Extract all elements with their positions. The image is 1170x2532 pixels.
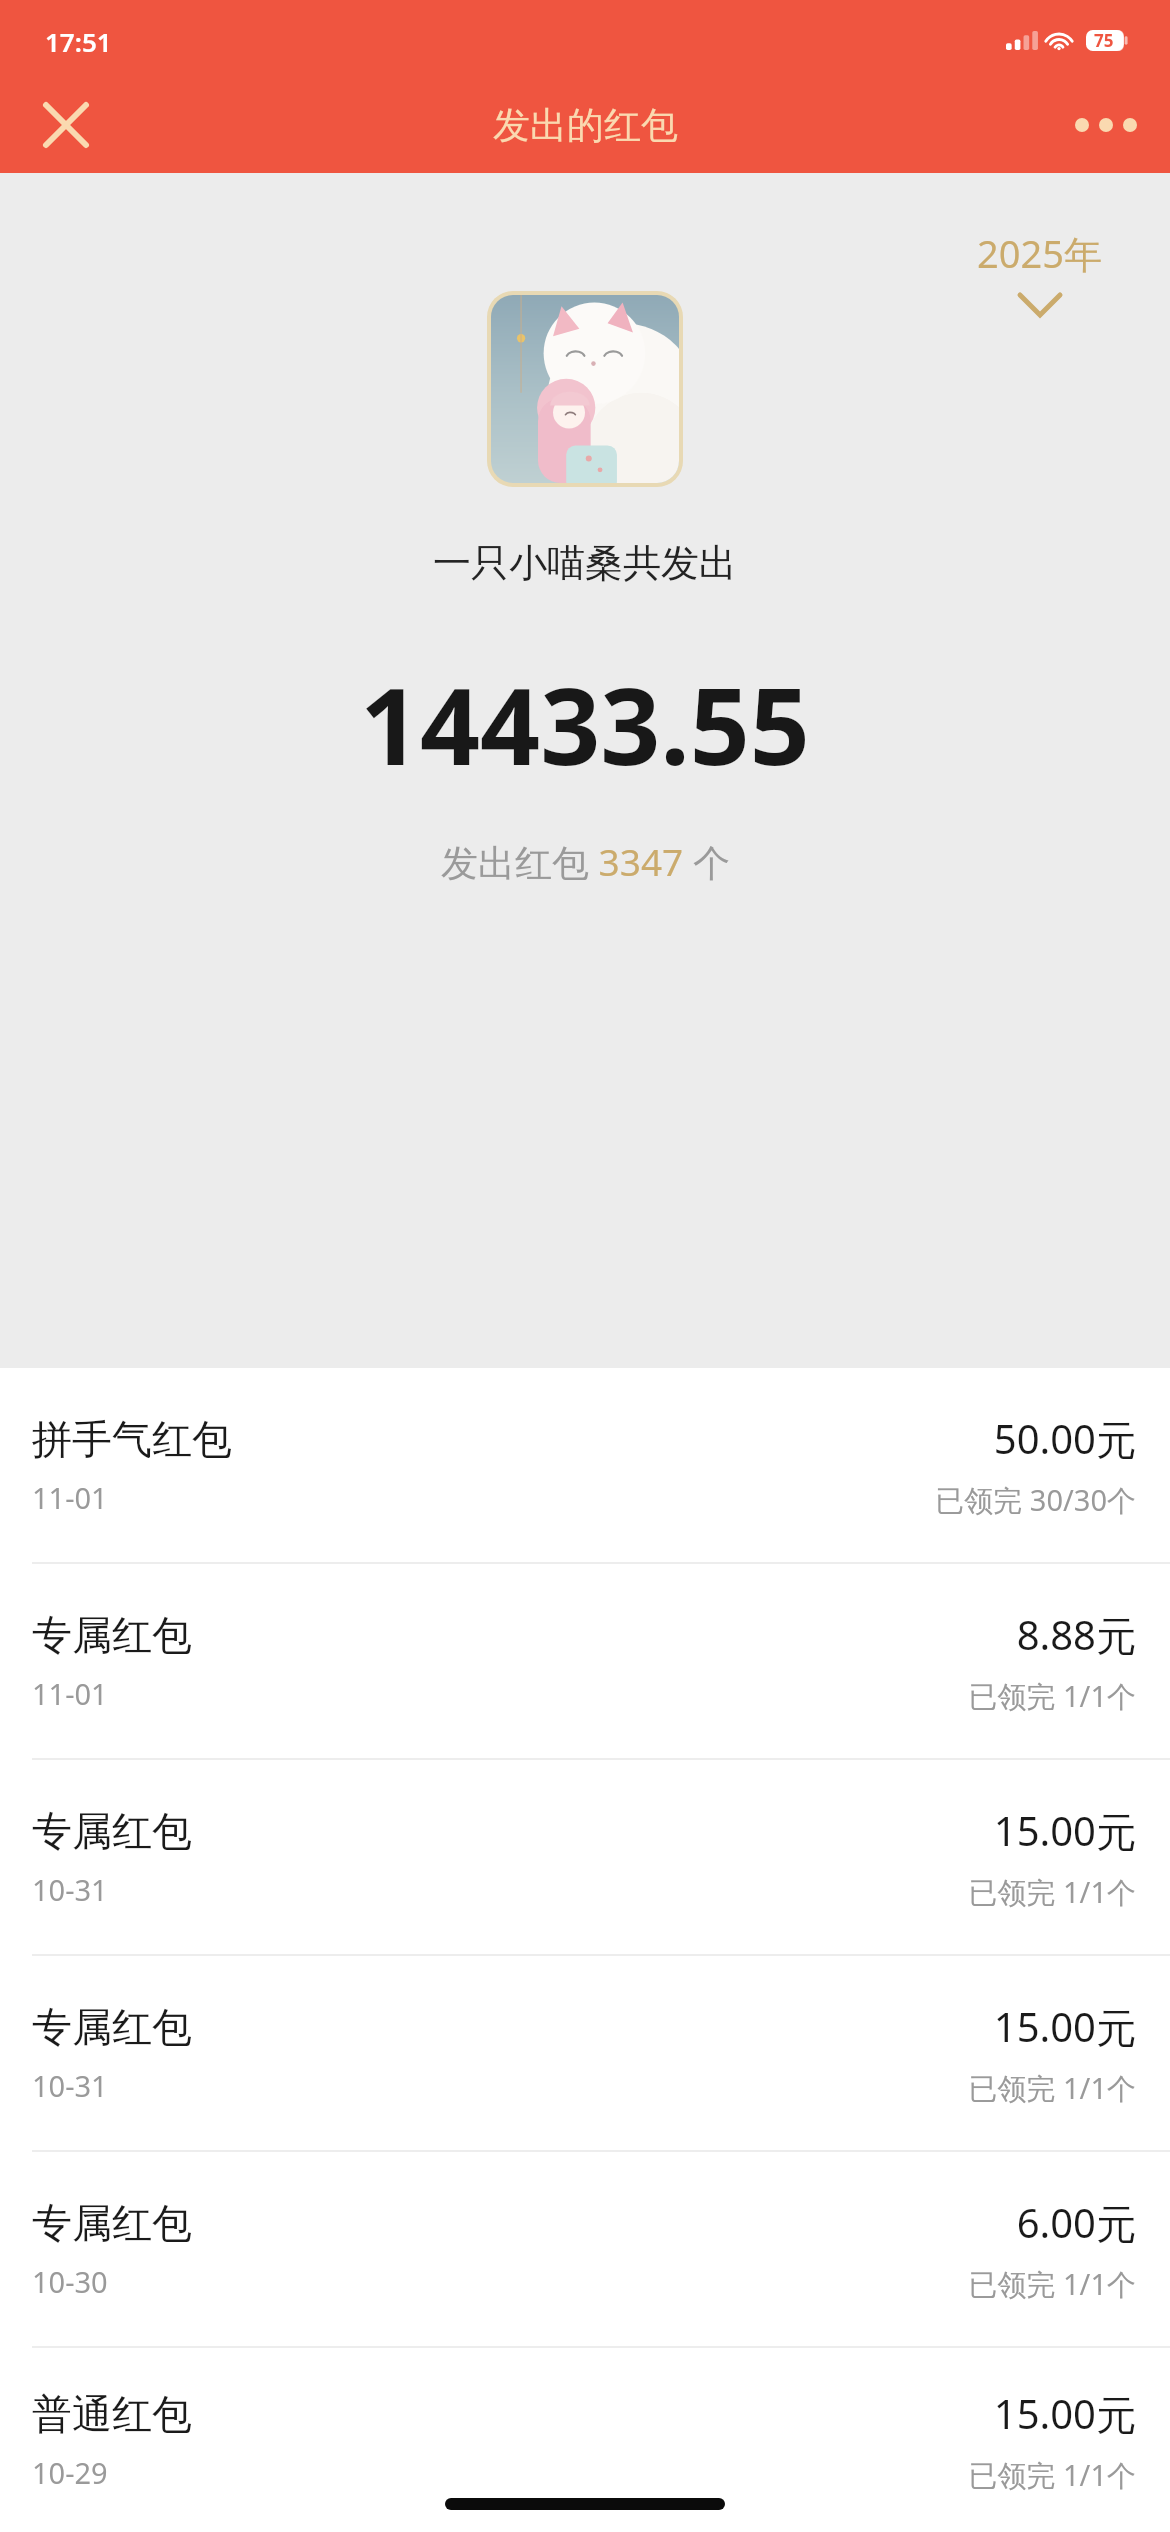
staticText: 50.00元 <box>993 1411 1136 1466</box>
staticText: 普通红包 <box>32 2389 192 2439</box>
staticText: 6.00元 <box>1016 2195 1136 2250</box>
staticText: 11-01 <box>32 1478 108 1517</box>
staticText: 已领完 1/1个 <box>968 1872 1136 1912</box>
staticText: 10-29 <box>32 2453 108 2492</box>
staticText: 已领完 1/1个 <box>968 2068 1136 2108</box>
button[interactable]: 专属红包 <box>0 2152 1170 2346</box>
staticText: 8.88元 <box>1016 1607 1136 1662</box>
staticText: 专属红包 <box>32 1806 192 1856</box>
staticText: 2025年 <box>977 227 1102 279</box>
button[interactable]: 专属红包 <box>0 1760 1170 1954</box>
staticText: 15.00元 <box>993 2386 1136 2441</box>
staticText: 已领完 1/1个 <box>968 1676 1136 1716</box>
staticText: 一只小喵桑共发出 <box>433 539 737 587</box>
staticText: 10-30 <box>32 2262 108 2301</box>
staticText: 15.00元 <box>993 1803 1136 1858</box>
staticText: 专属红包 <box>32 1610 192 1660</box>
staticText: 已领完 1/1个 <box>968 2264 1136 2304</box>
button[interactable]: More options <box>1070 89 1142 161</box>
staticText: 专属红包 <box>32 2198 192 2248</box>
staticText: 11-01 <box>32 1674 108 1713</box>
staticText: 专属红包 <box>32 2002 192 2052</box>
staticText: 拼手气红包 <box>32 1414 232 1464</box>
button[interactable]: 2025年 <box>969 223 1110 319</box>
button[interactable]: 普通红包 <box>0 2348 1170 2532</box>
staticText: 10-31 <box>32 2066 108 2105</box>
staticText: 已领完 1/1个 <box>968 2455 1136 2495</box>
staticText: 发出的红包 <box>493 102 678 149</box>
button[interactable]: Profile avatar <box>491 295 679 483</box>
staticText: 17:51 <box>45 24 112 59</box>
staticText: 14433.55 <box>360 653 810 796</box>
staticText: 已领完 30/30个 <box>935 1480 1136 1520</box>
staticText: 15.00元 <box>993 1999 1136 2054</box>
button[interactable]: 拼手气红包 <box>0 1368 1170 1562</box>
staticText: 发出红包 3347 个 <box>441 836 730 887</box>
button[interactable]: 专属红包 <box>0 1956 1170 2150</box>
button[interactable]: Close <box>30 89 102 161</box>
button[interactable]: 专属红包 <box>0 1564 1170 1758</box>
staticText: 10-31 <box>32 1870 108 1909</box>
staticText: 75 <box>1094 29 1114 52</box>
